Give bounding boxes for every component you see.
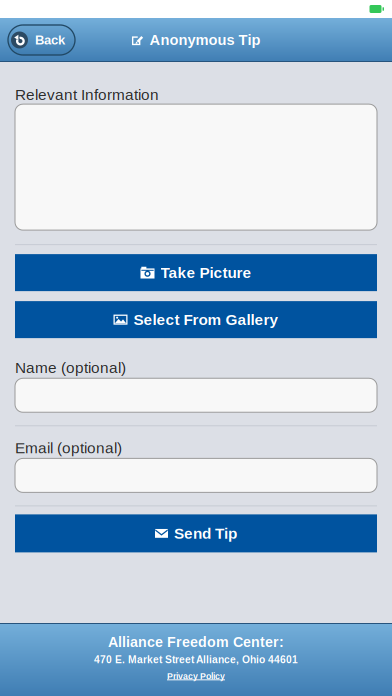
staticText: Back <box>35 33 65 47</box>
button[interactable]: Back <box>8 25 75 55</box>
staticText: Privacy Policy <box>167 671 225 681</box>
staticText: Relevant Information <box>15 86 159 103</box>
staticText: Send Tip <box>174 525 237 542</box>
button[interactable]: Take Picture <box>15 254 377 291</box>
staticText: Name (optional) <box>15 359 126 376</box>
staticText: Email (optional) <box>15 439 122 456</box>
button[interactable]: Send Tip <box>15 514 377 552</box>
staticText: 470 E. Market Street Alliance, Ohio 4460… <box>94 654 298 665</box>
staticText: Select From Gallery <box>133 311 278 328</box>
staticText: Alliance Freedom Center: <box>108 634 284 650</box>
button[interactable]: Select From Gallery <box>15 301 377 338</box>
staticText: Take Picture <box>160 264 251 281</box>
button[interactable]: Privacy Policy <box>167 671 225 681</box>
staticText: Anonymous Tip <box>149 32 260 48</box>
